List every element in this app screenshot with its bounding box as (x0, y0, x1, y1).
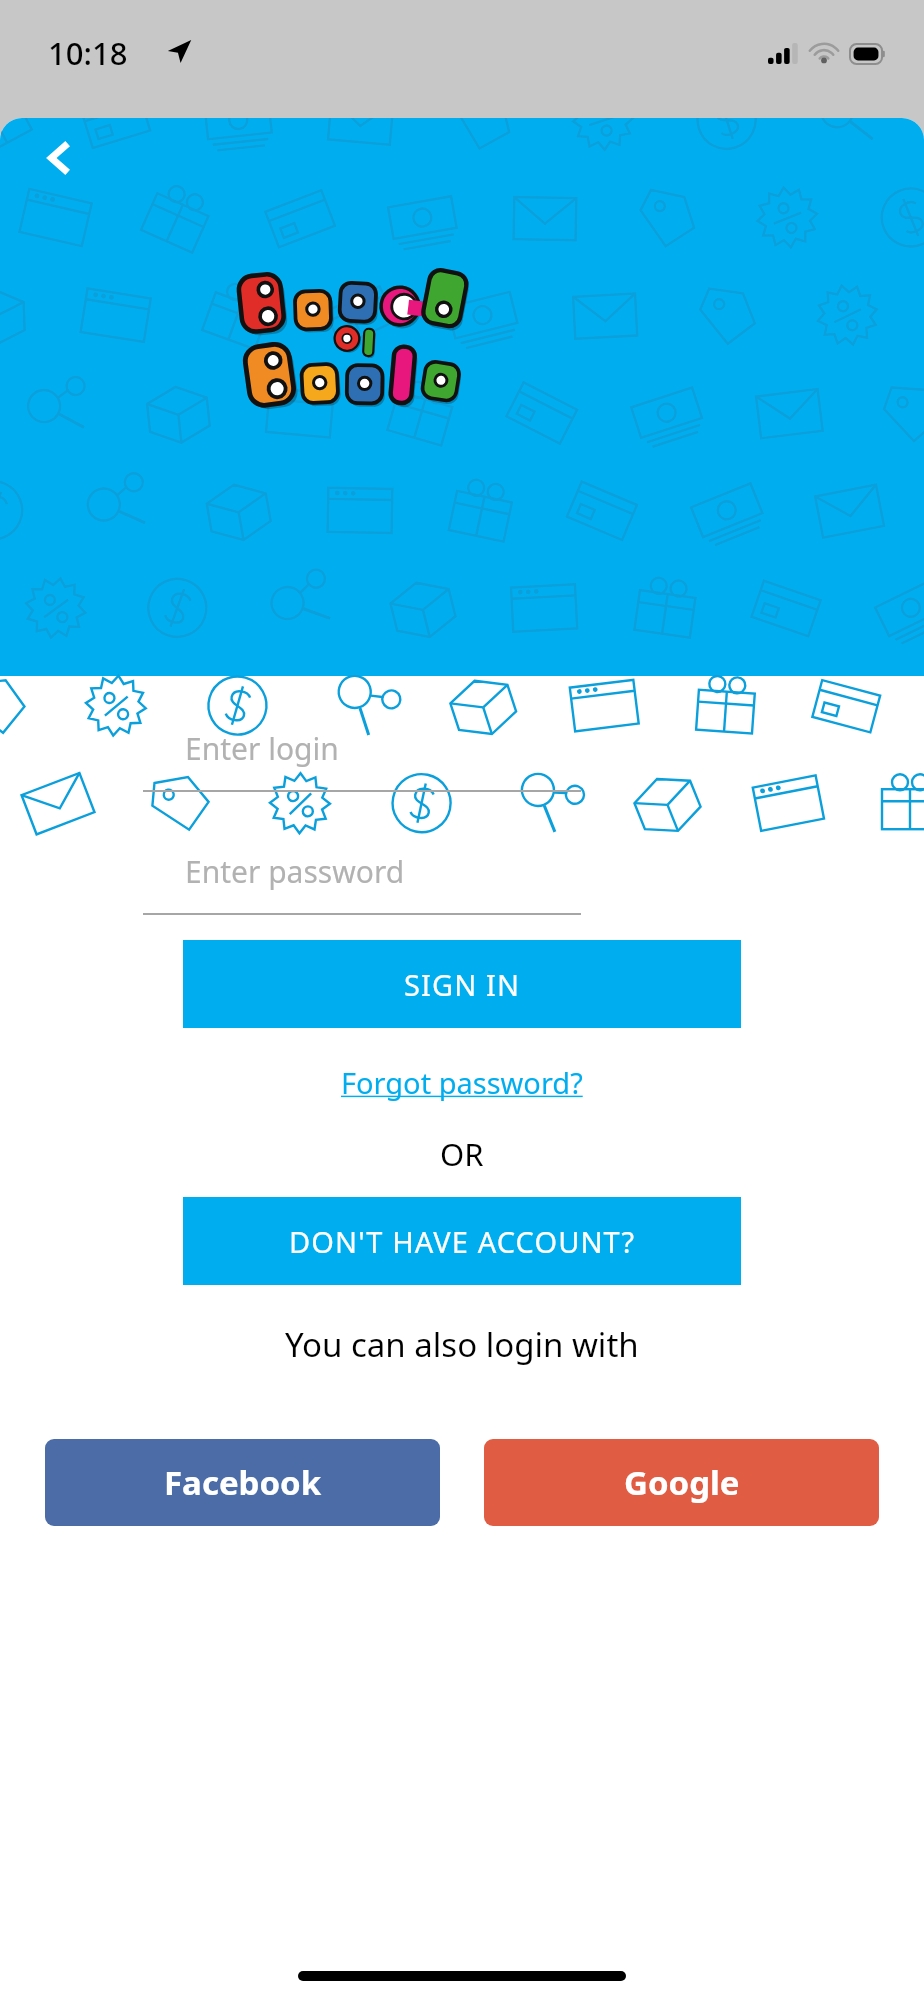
staticText: SIGN IN (404, 965, 521, 1004)
button[interactable]: DON'T HAVE ACCOUNT? (183, 1197, 741, 1285)
staticText: You can also login with (285, 1322, 639, 1367)
button[interactable]: SIGN IN (183, 940, 741, 1028)
staticText: OR (440, 1133, 484, 1175)
button[interactable]: Google (484, 1439, 879, 1526)
staticText: Enter login (185, 728, 339, 769)
staticText: Google (624, 1460, 740, 1505)
staticText: Forgot password? (341, 1063, 583, 1102)
button[interactable]: Forgot password? (329, 1056, 595, 1109)
button[interactable]: Enter login (143, 728, 581, 792)
staticText: Facebook (164, 1460, 322, 1505)
staticText: 10:18 (48, 32, 128, 74)
button[interactable]: Back (26, 124, 94, 192)
staticText: Enter password (185, 851, 405, 892)
button[interactable]: Enter password (143, 851, 581, 915)
button[interactable]: Facebook (45, 1439, 440, 1526)
staticText: DON'T HAVE ACCOUNT? (289, 1222, 636, 1261)
